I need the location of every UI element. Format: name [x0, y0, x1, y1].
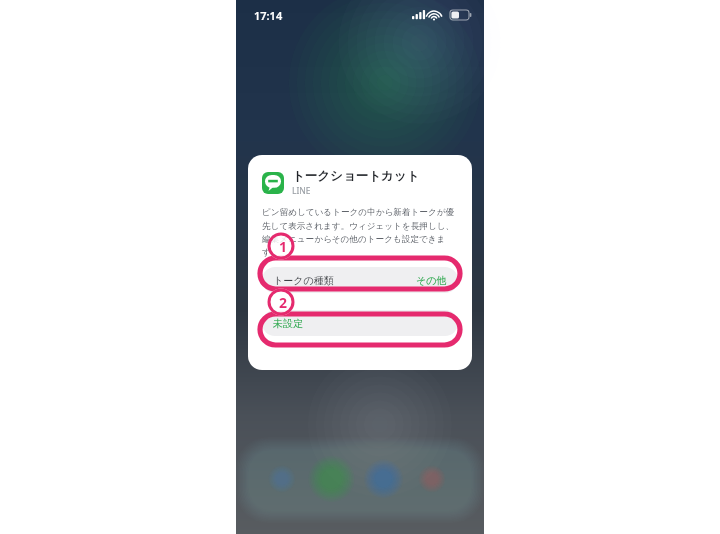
- button[interactable]: トークの種類: [262, 267, 458, 293]
- staticText: 1: [279, 237, 288, 256]
- staticText: 17:14: [254, 8, 283, 23]
- other: LINE: [262, 172, 284, 194]
- staticText: 未設定: [273, 317, 303, 330]
- staticText: トークの種類: [273, 274, 334, 287]
- staticText: LINE: [292, 185, 311, 197]
- staticText: トークショートカット: [292, 168, 420, 184]
- staticText: ピン留めしているトークの中から新着トークが優先して表示されます。ウィジェットを長…: [262, 207, 458, 257]
- staticText: その他: [416, 274, 447, 287]
- button[interactable]: 未設定: [262, 310, 458, 336]
- staticText: 2: [279, 293, 288, 312]
